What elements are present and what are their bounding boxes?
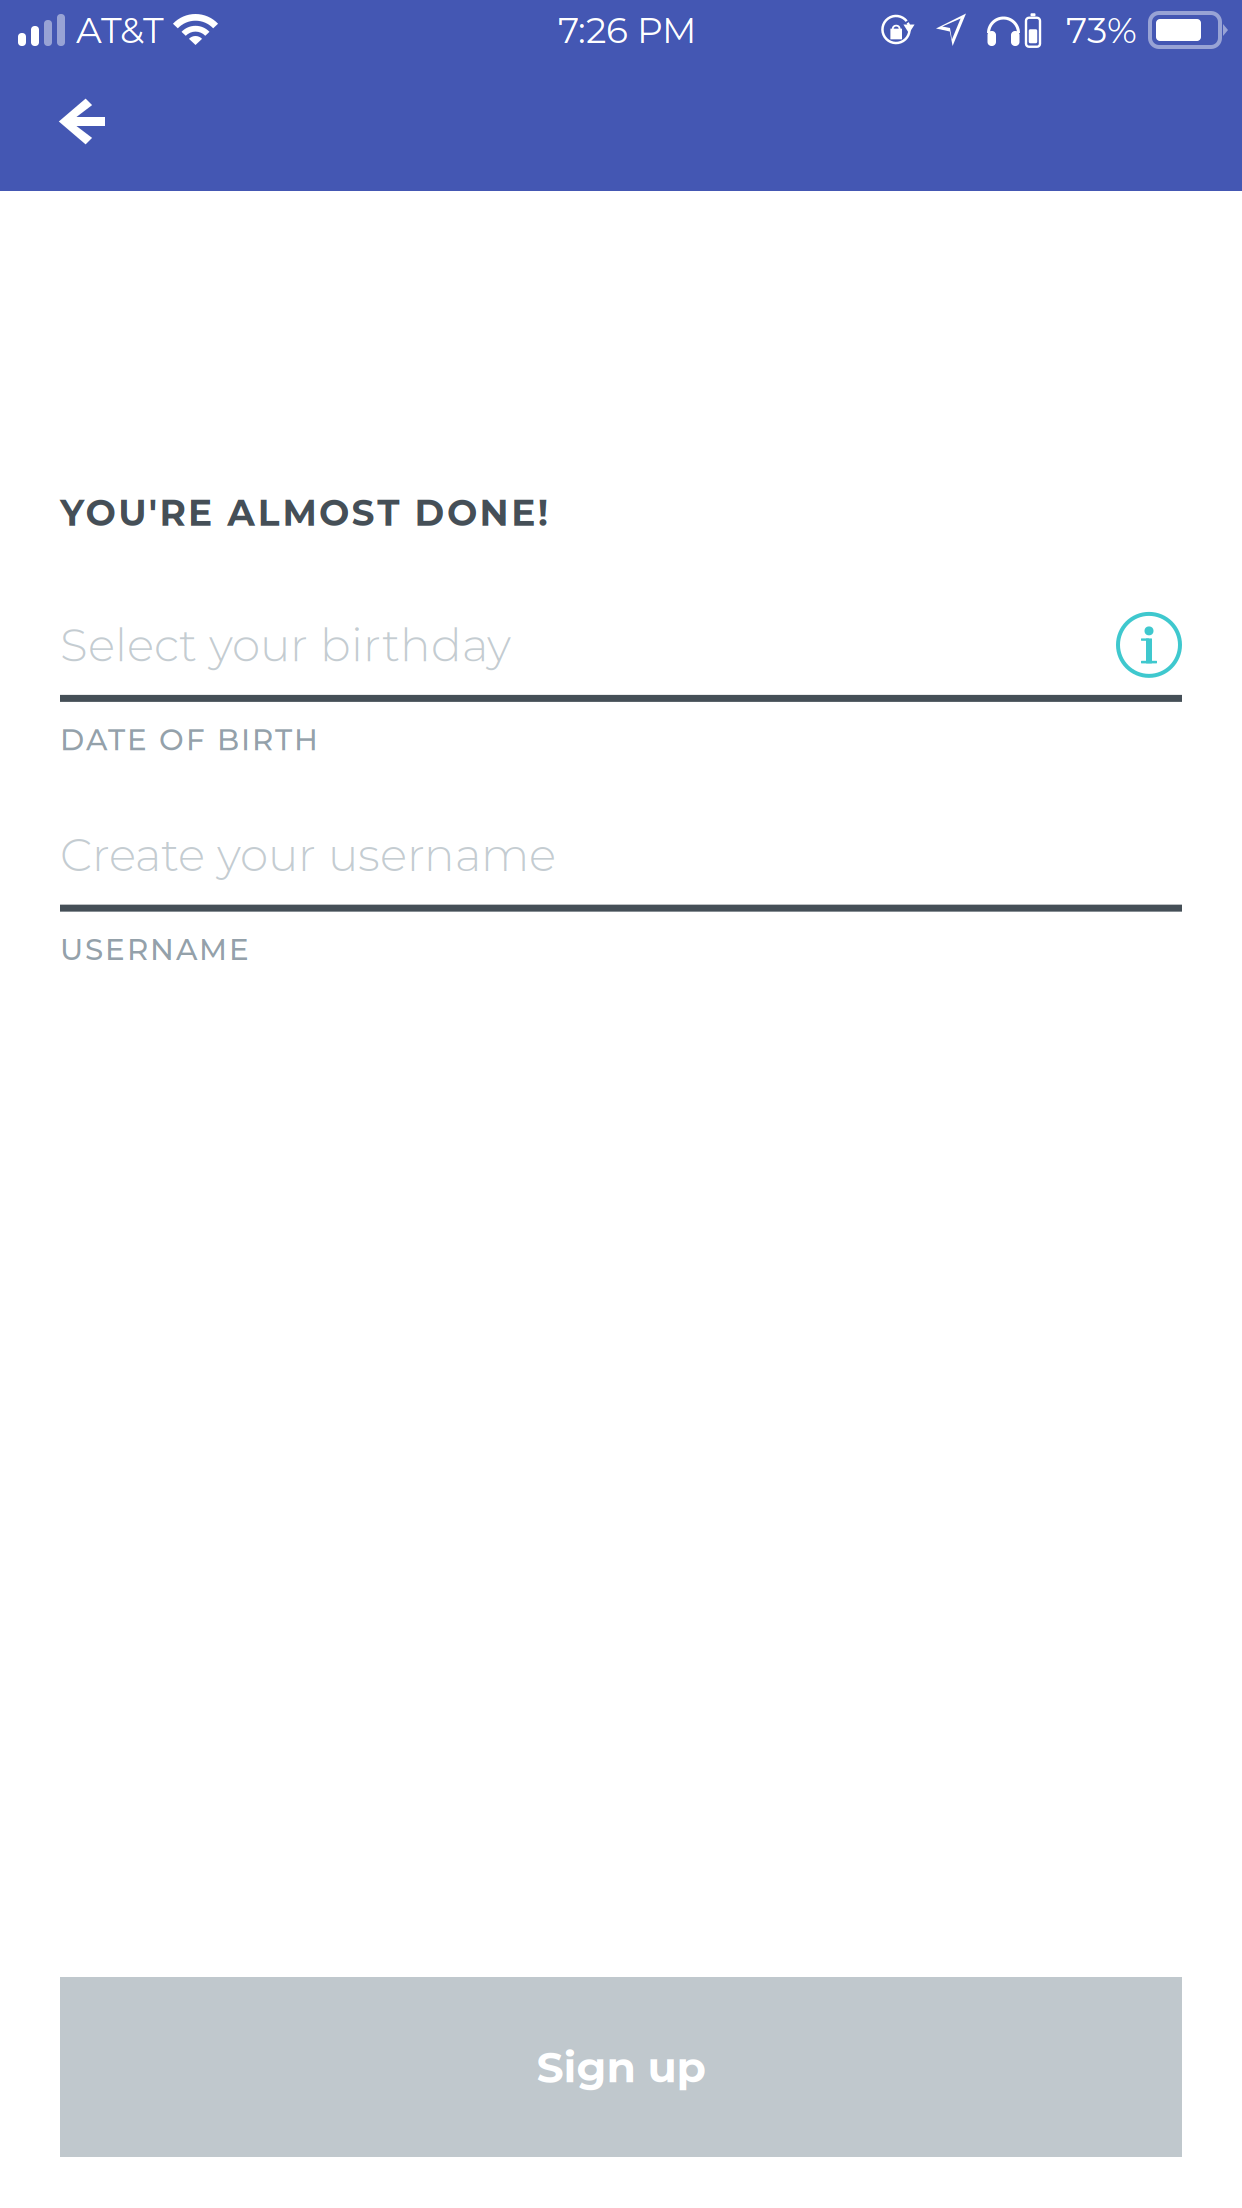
button[interactable]: Why we need your date of birth — [1116, 612, 1182, 678]
staticText: USERNAME — [60, 932, 249, 967]
button[interactable]: Sign up — [60, 1977, 1182, 2157]
staticText: DATE OF BIRTH — [60, 722, 318, 758]
staticText: Create your username — [60, 827, 556, 882]
staticText: YOU'RE ALMOST DONE! — [60, 491, 548, 535]
button[interactable]: Back — [0, 57, 130, 190]
staticText: Select your birthday — [60, 617, 511, 673]
staticText: 7:26 PM — [558, 8, 696, 52]
staticText: AT&T — [76, 8, 164, 52]
staticText: Sign up — [536, 2041, 705, 2093]
staticText: 73% — [1066, 8, 1137, 52]
